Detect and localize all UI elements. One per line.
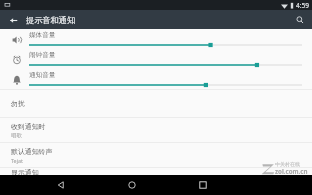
button[interactable]: Search (293, 13, 307, 27)
staticText: 通知音量 (29, 71, 56, 79)
staticText: zol.com.cn (275, 167, 308, 175)
staticText: 中关村在线 (275, 161, 300, 167)
staticText: 勿扰 (11, 99, 25, 108)
staticText: 默认通知铃声 (11, 147, 53, 156)
staticText: 闹钟音量 (29, 51, 56, 59)
button[interactable]: 收到通知时 (0, 118, 312, 142)
staticText: 显示通知 (11, 168, 39, 175)
staticText: 4:59 (296, 1, 309, 10)
button[interactable]: Back (50, 175, 72, 195)
staticText: 收到通知时 (11, 122, 46, 131)
button[interactable]: 媒体音量 (0, 29, 312, 49)
staticText: 提示音和通知 (26, 15, 76, 25)
button[interactable]: 闹钟音量 (0, 49, 312, 69)
staticText: Tejat (11, 157, 24, 164)
button[interactable]: Home (121, 175, 143, 195)
button[interactable]: Recent apps (192, 175, 214, 195)
staticText: 唱歌 (11, 132, 22, 139)
button[interactable]: 勿扰 (0, 90, 312, 117)
staticText: 媒体音量 (29, 31, 56, 39)
button[interactable]: Back (6, 13, 20, 27)
button[interactable]: 显示通知 (0, 168, 312, 175)
button[interactable]: 通知音量 (0, 69, 312, 89)
button[interactable]: 默认通知铃声 (0, 143, 312, 167)
